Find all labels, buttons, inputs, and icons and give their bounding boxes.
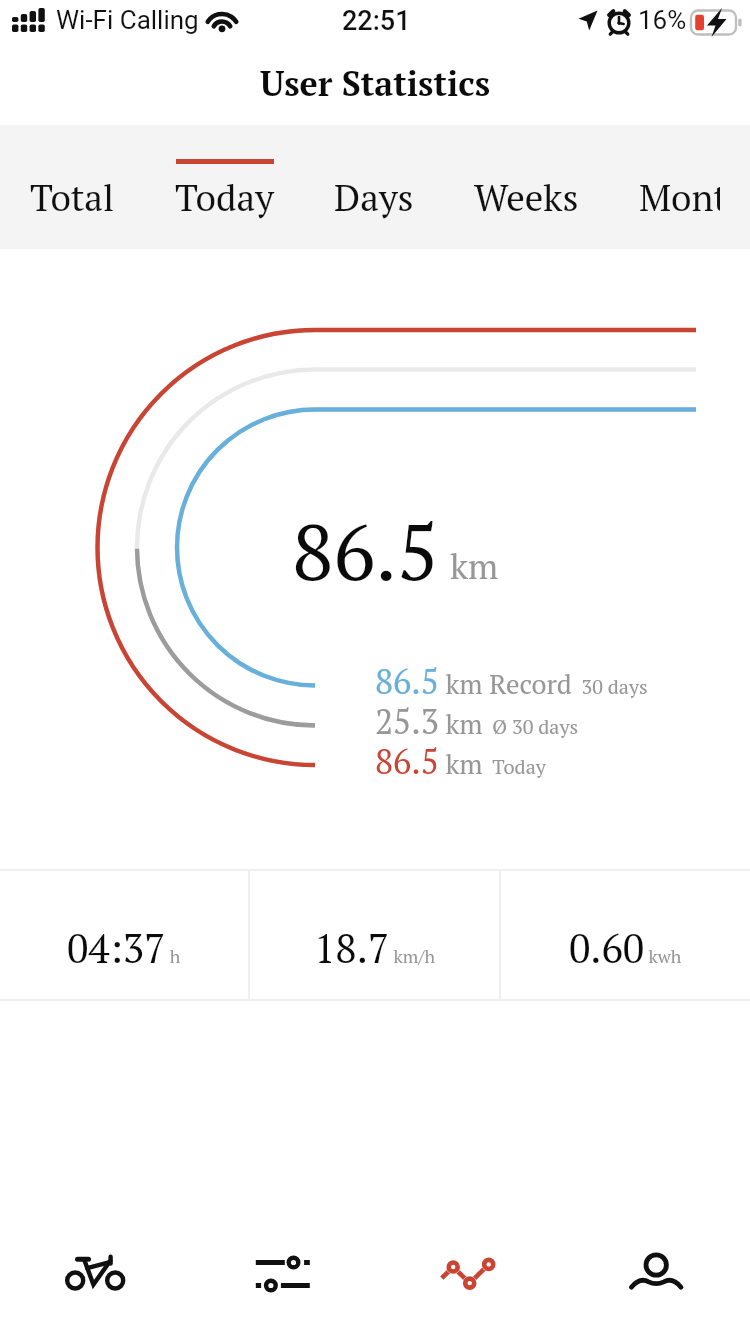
button[interactable]: Statistics (374, 1228, 562, 1318)
button[interactable]: Profile (562, 1228, 750, 1318)
staticText: Days (334, 173, 414, 222)
staticText: 25.3 km Ø 30 days (375, 699, 579, 744)
staticText: 18.7 km/h (314, 921, 436, 974)
staticText: User Statistics (0, 61, 750, 106)
button[interactable]: Settings (187, 1228, 374, 1318)
staticText: 0.60 kwh (569, 921, 682, 974)
button[interactable]: 0.60 kwh (501, 871, 750, 999)
staticText: 22:51 (342, 5, 411, 37)
staticText: 16% (638, 5, 687, 35)
button[interactable]: 18.7 km/h (250, 871, 499, 999)
button[interactable]: 04:37 h (0, 871, 248, 999)
button[interactable]: Total (0, 125, 145, 249)
button[interactable]: Months (609, 125, 750, 249)
staticText: Months (639, 173, 720, 222)
staticText: 86.5 km Today (375, 739, 546, 784)
staticText: 86.5 (292, 499, 439, 602)
staticText: km (450, 543, 499, 589)
staticText: 04:37 h (67, 921, 181, 974)
staticText: Weeks (474, 173, 579, 222)
staticText: 86.5 km Record 30 days (375, 659, 648, 704)
button[interactable]: Weeks (444, 125, 609, 249)
staticText: Wi-Fi Calling (56, 5, 199, 35)
button[interactable]: Rides (0, 1228, 187, 1318)
button[interactable]: Days (304, 125, 444, 249)
button[interactable]: Today (145, 125, 304, 249)
staticText: Today (175, 173, 274, 222)
staticText: Total (30, 173, 115, 222)
